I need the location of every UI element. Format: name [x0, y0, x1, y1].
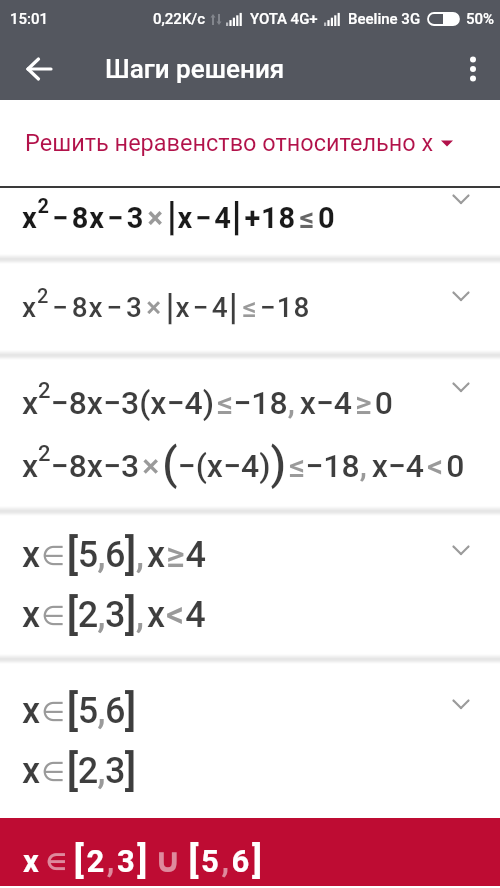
- staticText: x2 − 8x − 3 × |x − 4| +18 ≤ 0: [22, 193, 336, 240]
- staticText: x ∈ [5,6], x ≥ 4: [22, 529, 206, 579]
- staticText: Решить неравенство относительно x: [25, 129, 434, 157]
- staticText: x ∈ [5,6]: [22, 685, 137, 735]
- button[interactable]: x ∈ [2,3] ∪ [5,6]: [0, 818, 500, 886]
- button[interactable]: Решить неравенство относительно x: [0, 100, 500, 186]
- button[interactable]: x2 − 8x − 3 × |x − 4| ≤ −18: [0, 264, 500, 350]
- button[interactable]: x ∈ [5,6]: [0, 664, 500, 818]
- button[interactable]: x2−8x−3(x−4) ≤−18, x−4 ≥ 0: [0, 360, 500, 506]
- staticText: Шаги решения: [105, 54, 285, 84]
- staticText: 50%: [466, 10, 495, 28]
- staticText: Beeline 3G: [348, 10, 421, 28]
- staticText: x2−8x−3 × (−(x−4)) ≤−18, x−4 < 0: [22, 438, 465, 490]
- staticText: YOTA 4G+: [250, 10, 318, 28]
- button[interactable]: [18, 48, 60, 90]
- staticText: x ∈ [2,3]: [22, 745, 137, 795]
- staticText: x2 − 8x − 3 × |x − 4| ≤ −18: [22, 284, 311, 327]
- staticText: 15:01: [10, 10, 49, 28]
- button[interactable]: x2 − 8x − 3 × |x − 4| +18 ≤ 0: [0, 188, 500, 254]
- button[interactable]: x ∈ [5,6], x ≥ 4: [0, 516, 500, 654]
- staticText: x ∈ [2,3] ∪ [5,6]: [23, 840, 265, 882]
- staticText: x ∈ [2,3], x < 4: [22, 589, 206, 639]
- staticText: x2−8x−3(x−4) ≤−18, x−4 ≥ 0: [22, 378, 393, 422]
- button[interactable]: [460, 47, 486, 91]
- staticText: 0,22K/c: [153, 10, 206, 28]
